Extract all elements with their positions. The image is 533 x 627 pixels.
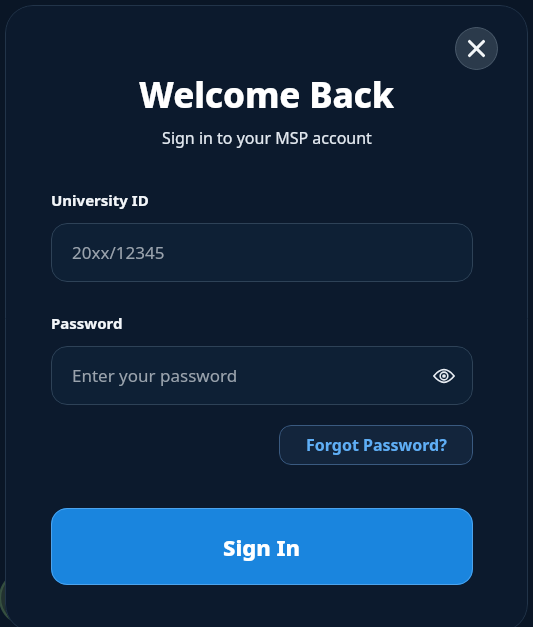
button[interactable]: Close <box>455 27 498 70</box>
button[interactable]: Forgot Password? <box>279 425 473 465</box>
staticText: Welcome Back <box>139 71 394 119</box>
staticText: Enter your password <box>72 364 238 387</box>
staticText: Sign In <box>223 532 301 562</box>
button[interactable]: 20xx/12345 <box>51 223 473 282</box>
staticText: Password <box>51 313 123 333</box>
button[interactable]: Enter your password <box>51 346 473 405</box>
button[interactable]: Sign In <box>51 508 473 585</box>
staticText: Sign in to your MSP account <box>162 127 372 149</box>
staticText: 20xx/12345 <box>72 241 165 264</box>
button[interactable]: Show password <box>428 360 460 392</box>
staticText: Forgot Password? <box>306 434 447 456</box>
staticText: University ID <box>51 190 149 210</box>
